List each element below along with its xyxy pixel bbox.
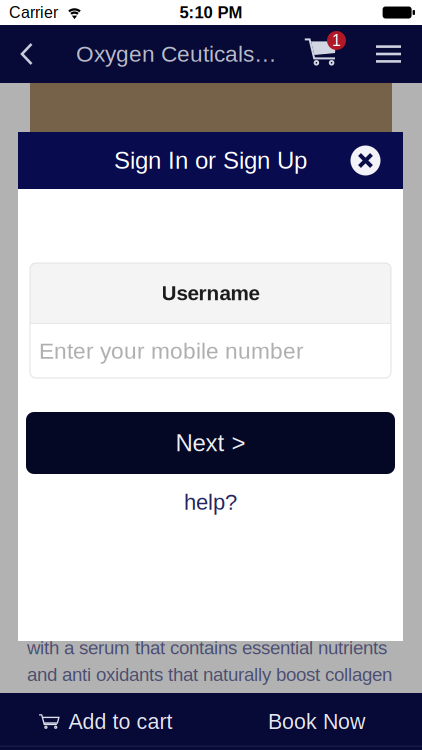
button[interactable]: Cart <box>304 25 365 83</box>
staticText: Add to cart <box>68 710 172 733</box>
staticText: Username <box>161 281 259 305</box>
button[interactable]: help? <box>18 482 403 522</box>
staticText: Oxygen Ceuticals… <box>76 41 277 67</box>
staticText: 1 <box>332 32 341 49</box>
staticText: help? <box>184 490 237 514</box>
button[interactable]: Book Now <box>211 693 422 750</box>
staticText: Book Now <box>268 710 365 733</box>
staticText: Carrier <box>9 4 58 21</box>
staticText: 5:10 PM <box>179 3 242 22</box>
button[interactable]: Close <box>350 145 381 176</box>
button[interactable]: Menu <box>365 25 412 83</box>
staticText: Next > <box>175 430 245 456</box>
button[interactable]: Back <box>0 25 54 83</box>
staticText: Sign In or Sign Up <box>114 147 307 174</box>
staticText: Enter your mobile number <box>39 338 304 364</box>
staticText: with a serum that contains essential nut… <box>27 637 387 658</box>
button[interactable]: Add to cart <box>0 693 211 750</box>
button[interactable]: Next > <box>26 412 395 474</box>
staticText: and anti oxidants that naturally boost c… <box>27 664 392 685</box>
